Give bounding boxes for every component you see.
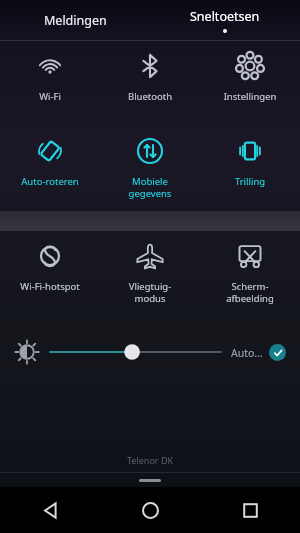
staticText: Sneltoetsen	[190, 8, 260, 25]
staticText: Auto-roteren	[0, 175, 100, 188]
button[interactable]: Recents	[200, 487, 300, 533]
button[interactable]: Scherm- afbeelding	[200, 231, 300, 311]
button[interactable]: Instellingen	[200, 41, 300, 109]
button[interactable]: Brightness slider	[50, 339, 221, 365]
button[interactable]: Meldingen	[0, 0, 150, 40]
button[interactable]: Sneltoetsen	[150, 0, 300, 40]
staticText: Telenor DK	[0, 454, 300, 466]
button[interactable]: Home	[100, 487, 200, 533]
staticText: Scherm- afbeelding	[200, 280, 300, 305]
button[interactable]: Back	[0, 487, 100, 533]
button[interactable]: Bluetooth	[100, 41, 200, 109]
staticText: Instellingen	[200, 90, 300, 103]
button[interactable]: Wi-Fi	[0, 41, 100, 109]
staticText: Meldingen	[44, 12, 107, 29]
button[interactable]: Mobiele gegevens	[100, 126, 200, 206]
staticText: Bluetooth	[100, 90, 200, 103]
staticText: Vliegtuig- modus	[100, 280, 200, 305]
button[interactable]: Wi-Fi-hotspot	[0, 231, 100, 299]
button[interactable]: Vliegtuig- modus	[100, 231, 200, 311]
staticText: Wi-Fi	[0, 90, 100, 103]
staticText: Mobiele gegevens	[100, 175, 200, 200]
button[interactable]: Auto…	[231, 344, 286, 361]
button[interactable]: Auto-roteren	[0, 126, 100, 194]
staticText: Trilling	[200, 175, 300, 188]
button[interactable]: Trilling	[200, 126, 300, 194]
staticText: Wi-Fi-hotspot	[0, 280, 100, 293]
staticText: Auto…	[231, 346, 263, 360]
